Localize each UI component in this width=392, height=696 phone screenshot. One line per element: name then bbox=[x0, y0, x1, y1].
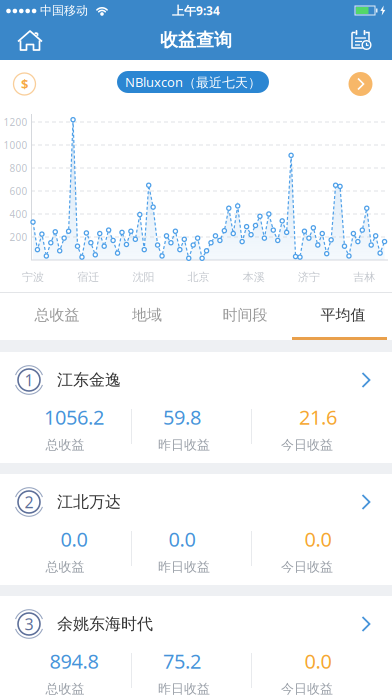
staticText: 59.8 bbox=[163, 403, 201, 431]
staticText: 今日收益 bbox=[281, 681, 333, 696]
button[interactable]: 平均值 bbox=[296, 293, 390, 337]
staticText: $ bbox=[21, 75, 28, 93]
staticText: 0.0 bbox=[168, 525, 195, 553]
staticText: 0.0 bbox=[304, 647, 331, 675]
staticText: 今日收益 bbox=[281, 437, 333, 453]
staticText: 平均值 bbox=[320, 306, 365, 324]
staticText: 今日收益 bbox=[281, 559, 333, 575]
button[interactable]: 下一步 bbox=[348, 72, 372, 96]
staticText: 吉林 bbox=[353, 270, 375, 284]
staticText: 上午9:34 bbox=[172, 2, 220, 19]
staticText: 21.6 bbox=[299, 403, 337, 431]
button[interactable]: 1 bbox=[0, 352, 392, 463]
staticText: 总收益 bbox=[45, 559, 84, 575]
staticText: 总收益 bbox=[34, 306, 79, 324]
staticText: 3 bbox=[24, 613, 33, 635]
staticText: 894.8 bbox=[49, 647, 98, 675]
button[interactable]: 时间段 bbox=[198, 293, 292, 337]
staticText: 宿迁 bbox=[77, 270, 99, 284]
staticText: 1056.2 bbox=[44, 403, 104, 431]
staticText: 0.0 bbox=[60, 525, 87, 553]
button[interactable]: 2 bbox=[0, 474, 392, 585]
staticText: 昨日收益 bbox=[158, 681, 210, 696]
staticText: 600 bbox=[9, 184, 27, 198]
button[interactable]: 地域 bbox=[100, 293, 194, 337]
staticText: 余姚东海时代 bbox=[57, 614, 153, 634]
staticText: 宁波 bbox=[22, 270, 44, 284]
staticText: 总收益 bbox=[45, 681, 84, 696]
staticText: 800 bbox=[9, 161, 27, 175]
staticText: 收益查询 bbox=[160, 29, 232, 51]
staticText: 0.0 bbox=[304, 525, 331, 553]
staticText: 1 bbox=[24, 369, 33, 391]
staticText: 中国移动 bbox=[40, 3, 88, 18]
staticText: 2 bbox=[24, 491, 33, 513]
button[interactable]: 3 bbox=[0, 596, 392, 696]
staticText: 75.2 bbox=[163, 647, 201, 675]
staticText: 400 bbox=[9, 207, 27, 221]
button[interactable]: 历史记录 bbox=[339, 21, 383, 60]
button[interactable]: 收益 bbox=[13, 72, 36, 95]
staticText: 200 bbox=[9, 230, 27, 244]
staticText: 江北万达 bbox=[57, 492, 121, 512]
staticText: 济宁 bbox=[298, 270, 320, 284]
staticText: 1000 bbox=[3, 138, 27, 152]
staticText: 沈阳 bbox=[132, 270, 154, 284]
button[interactable]: 总收益 bbox=[10, 293, 104, 337]
staticText: 北京 bbox=[188, 270, 210, 284]
staticText: 地域 bbox=[132, 306, 162, 324]
staticText: 昨日收益 bbox=[158, 559, 210, 575]
button[interactable]: 首页 bbox=[8, 21, 52, 60]
staticText: 本溪 bbox=[243, 270, 265, 284]
staticText: 1200 bbox=[3, 115, 27, 129]
button[interactable]: NBluxcon（最近七天） bbox=[117, 71, 269, 93]
staticText: 江东金逸 bbox=[57, 370, 121, 390]
staticText: 时间段 bbox=[222, 306, 267, 324]
staticText: 昨日收益 bbox=[158, 437, 210, 453]
staticText: 总收益 bbox=[45, 437, 84, 453]
staticText: NBluxcon（最近七天） bbox=[125, 73, 261, 91]
